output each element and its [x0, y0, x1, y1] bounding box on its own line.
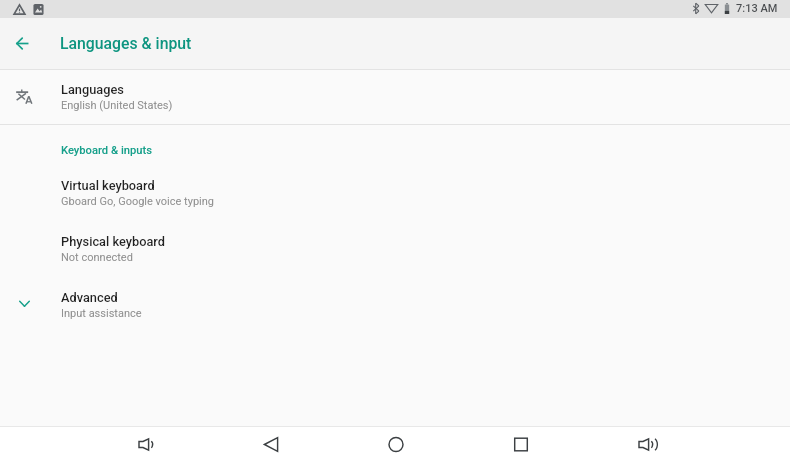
staticText: Advanced [61, 290, 118, 305]
staticText: Physical keyboard [61, 234, 165, 249]
button[interactable]: Back [208, 431, 333, 453]
other: Expand [17, 296, 32, 311]
button[interactable]: Languages [0, 70, 790, 124]
staticText: Keyboard & inputs [61, 144, 152, 157]
button[interactable]: Home [333, 431, 458, 453]
button[interactable]: Recents [458, 431, 583, 453]
button[interactable]: Expand [0, 277, 790, 333]
button[interactable]: Volume up [583, 431, 708, 453]
staticText: Languages [61, 82, 124, 97]
other: Languages [16, 88, 32, 104]
button[interactable]: Back [6, 27, 38, 59]
staticText: Languages & input [60, 34, 192, 53]
staticText: Virtual keyboard [61, 178, 155, 193]
staticText: 7:13 AM [736, 2, 778, 15]
staticText: Not connected [61, 251, 133, 264]
button[interactable]: Volume down [83, 431, 208, 453]
staticText: Input assistance [61, 307, 142, 320]
staticText: Gboard Go, Google voice typing [61, 195, 215, 208]
button[interactable]: Physical keyboard [0, 221, 790, 277]
staticText: English (United States) [61, 99, 173, 112]
button[interactable]: Virtual keyboard [0, 165, 790, 221]
